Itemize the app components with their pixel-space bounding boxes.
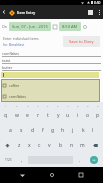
staticText: 8 bbox=[77, 104, 79, 107]
staticText: h bbox=[61, 127, 65, 134]
button[interactable]: s bbox=[16, 123, 27, 138]
staticText: m bbox=[80, 142, 85, 149]
button[interactable]: Shift bbox=[0, 138, 14, 153]
button[interactable]: l bbox=[88, 123, 98, 138]
button[interactable]: y bbox=[53, 108, 63, 123]
staticText: c bbox=[38, 142, 41, 149]
button[interactable]: g bbox=[48, 123, 58, 138]
button[interactable]: n bbox=[66, 138, 77, 153]
button[interactable]: b bbox=[55, 138, 66, 153]
button[interactable]: a bbox=[5, 123, 16, 138]
button[interactable]: ?123 bbox=[0, 153, 16, 167]
staticText: o bbox=[86, 112, 90, 119]
staticText: 3 bbox=[27, 104, 29, 107]
button[interactable]: o bbox=[83, 108, 93, 123]
button[interactable]: . bbox=[74, 153, 85, 167]
staticText: x bbox=[28, 142, 31, 149]
staticText: 8:50 AM bbox=[62, 24, 78, 29]
staticText: f bbox=[42, 127, 44, 134]
staticText: Sun, 07 - Jun - 2015 bbox=[12, 24, 48, 29]
button[interactable]: z bbox=[14, 138, 24, 153]
button[interactable]: Pick date bbox=[53, 25, 57, 29]
button[interactable]: j bbox=[68, 123, 78, 138]
staticText: 5 bbox=[47, 104, 49, 107]
staticText: Enter individual items bbox=[3, 36, 39, 41]
button[interactable]: Back bbox=[14, 167, 30, 183]
button[interactable]: v bbox=[44, 138, 55, 153]
staticText: n bbox=[70, 142, 74, 149]
button[interactable]: p bbox=[93, 108, 103, 123]
button[interactable]: q bbox=[0, 108, 11, 123]
button[interactable]: More options bbox=[95, 5, 103, 19]
staticText: y bbox=[57, 112, 60, 119]
staticText: 6 bbox=[57, 104, 59, 107]
button[interactable]: Recent apps bbox=[73, 167, 89, 183]
button[interactable]: m bbox=[77, 138, 88, 153]
button[interactable]: , bbox=[16, 153, 27, 167]
button[interactable]: r bbox=[33, 108, 43, 123]
staticText: for Breakfast bbox=[3, 42, 25, 47]
button[interactable]: coffee bbox=[1, 79, 100, 91]
staticText: coffee bbox=[9, 83, 20, 88]
staticText: j bbox=[72, 127, 74, 134]
staticText: 7 bbox=[67, 104, 69, 107]
staticText: toast bbox=[2, 58, 11, 63]
staticText: s bbox=[20, 127, 23, 134]
staticText: 4 bbox=[37, 104, 39, 107]
staticText: i bbox=[77, 112, 79, 119]
staticText: l bbox=[92, 127, 94, 134]
staticText: e bbox=[26, 112, 29, 119]
button[interactable]: t bbox=[43, 108, 53, 123]
staticText: Save to Diary bbox=[69, 39, 94, 44]
staticText: Item Entry bbox=[17, 10, 36, 15]
staticText: g bbox=[51, 127, 55, 134]
button[interactable]: cornflakes bbox=[1, 91, 100, 102]
staticText: u bbox=[66, 112, 70, 119]
button[interactable]: i bbox=[73, 108, 83, 123]
staticText: . bbox=[79, 157, 81, 163]
staticText: v bbox=[48, 142, 51, 149]
staticText: ?123 bbox=[5, 158, 12, 162]
staticText: 0 bbox=[97, 104, 99, 107]
button[interactable]: Home bbox=[44, 167, 60, 183]
staticText: p bbox=[96, 112, 100, 119]
button[interactable]: Backspace bbox=[88, 138, 103, 153]
staticText: k bbox=[82, 127, 85, 134]
button[interactable]: k bbox=[78, 123, 88, 138]
staticText: 1 bbox=[5, 104, 7, 107]
staticText: butter bbox=[2, 65, 13, 70]
button[interactable]: w bbox=[11, 108, 22, 123]
button[interactable]: x bbox=[24, 138, 34, 153]
button[interactable]: Pick time bbox=[83, 25, 87, 29]
staticText: w bbox=[15, 112, 19, 119]
staticText: 8:50 bbox=[94, 1, 101, 5]
staticText: b bbox=[59, 142, 63, 149]
staticText: On bbox=[2, 24, 7, 29]
staticText: 2 bbox=[16, 104, 18, 107]
button[interactable]: Save to Diary bbox=[63, 36, 100, 47]
staticText: 9 bbox=[87, 104, 89, 107]
staticText: , bbox=[21, 157, 23, 163]
button[interactable]: d bbox=[27, 123, 38, 138]
button[interactable]: 8:50 AM bbox=[59, 22, 81, 31]
button[interactable]: f bbox=[38, 123, 48, 138]
staticText: d bbox=[31, 127, 35, 134]
staticText: z bbox=[18, 142, 21, 149]
staticText: r bbox=[37, 112, 40, 119]
button[interactable]: Sun, 07 - Jun - 2015 bbox=[9, 22, 51, 31]
button[interactable]: Save bbox=[85, 5, 95, 19]
staticText: q bbox=[4, 112, 8, 119]
button[interactable]: h bbox=[58, 123, 68, 138]
button[interactable]: u bbox=[63, 108, 73, 123]
button[interactable]: Navigate up bbox=[0, 5, 8, 19]
staticText: cornflakes bbox=[2, 51, 19, 56]
staticText: a bbox=[9, 127, 12, 134]
staticText: t bbox=[47, 112, 49, 119]
button[interactable]: e bbox=[22, 108, 33, 123]
staticText: cornflakes bbox=[9, 94, 26, 99]
button[interactable]: Enter bbox=[85, 153, 103, 167]
button[interactable]: c bbox=[34, 138, 44, 153]
